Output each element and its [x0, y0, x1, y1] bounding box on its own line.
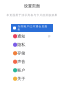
staticText: 设置页面	[24, 3, 40, 8]
button[interactable]: 隐私	[11, 40, 53, 49]
staticText: 存储	[17, 51, 25, 56]
button[interactable]: 账户	[11, 66, 53, 74]
staticText: 开	[48, 35, 51, 38]
staticText: 关于	[17, 76, 25, 81]
staticText: 通知	[17, 34, 25, 39]
staticText: 声音	[17, 59, 25, 64]
staticText: 本页面用于演示列表与卡片的排版效果	[6, 13, 57, 17]
button[interactable]: 通知	[11, 32, 53, 40]
staticText: 当前账户已开通会员服务	[17, 25, 47, 31]
button[interactable]: 关于	[11, 74, 53, 83]
staticText: 账户	[17, 68, 25, 73]
button[interactable]: 声音	[11, 57, 53, 66]
staticText: 隐私	[17, 42, 25, 47]
button[interactable]: 存储	[11, 49, 53, 57]
